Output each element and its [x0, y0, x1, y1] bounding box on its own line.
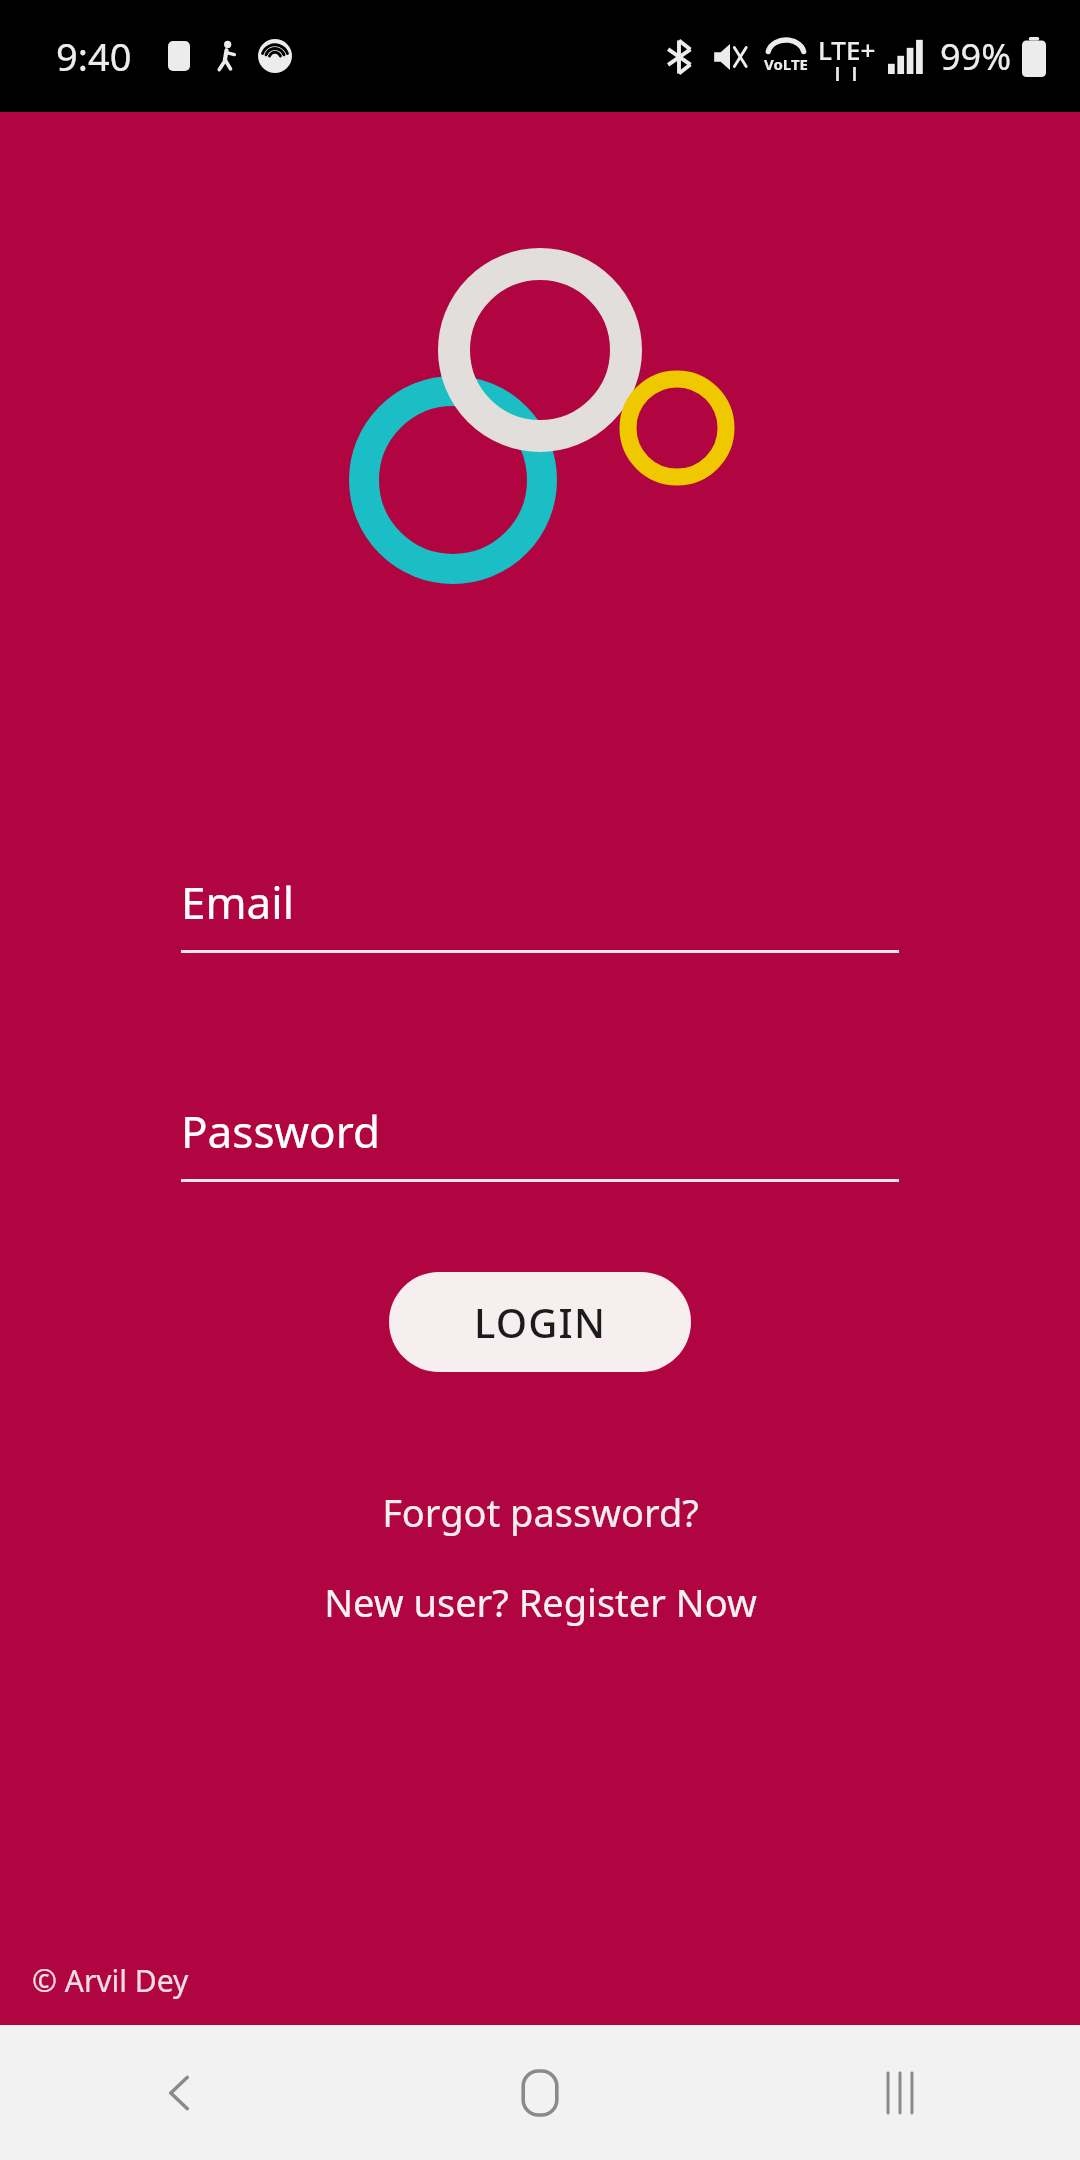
staticText: LOGIN — [474, 1295, 607, 1349]
button[interactable]: Recent apps — [720, 2025, 1080, 2160]
staticText: © Arvil Dey — [32, 1960, 189, 2001]
staticText: Password — [181, 1101, 381, 1161]
button[interactable]: Email — [181, 872, 899, 953]
staticText: LTE+ — [818, 32, 876, 67]
button[interactable]: Back — [0, 2025, 360, 2160]
button[interactable]: Password — [181, 1101, 899, 1182]
staticText: New user? Register Now — [324, 1576, 757, 1628]
button[interactable]: Forgot password? — [362, 1478, 719, 1546]
staticText: Forgot password? — [382, 1486, 699, 1538]
staticText: 9:40 — [56, 30, 132, 82]
staticText: Email — [181, 872, 294, 932]
button[interactable]: New user? Register Now — [304, 1568, 777, 1636]
button[interactable]: Home — [360, 2025, 720, 2160]
button[interactable]: LOGIN — [389, 1272, 691, 1372]
staticText: VoLTE — [764, 54, 808, 74]
staticText: 99% — [940, 32, 1012, 81]
